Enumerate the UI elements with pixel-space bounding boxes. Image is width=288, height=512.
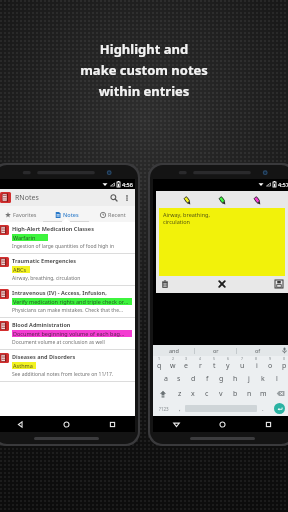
button[interactable]: High-Alert Medication Classes xyxy=(0,222,135,254)
button[interactable]: Notes xyxy=(43,206,89,222)
button[interactable]: 7 xyxy=(235,356,249,371)
staticText: z xyxy=(178,389,182,399)
button[interactable]: h xyxy=(228,371,242,386)
button[interactable]: Green highlighter xyxy=(215,194,229,206)
button[interactable]: Shift xyxy=(153,386,173,401)
button[interactable]: f xyxy=(200,371,214,386)
staticText: , xyxy=(179,405,181,413)
staticText: Diseases and Disorders xyxy=(12,353,76,360)
staticText: Notes xyxy=(63,211,79,218)
staticText: 1 xyxy=(158,356,161,361)
button[interactable]: Delete xyxy=(159,278,171,290)
button[interactable]: a xyxy=(159,371,172,386)
staticText: ABCs xyxy=(13,266,27,273)
button[interactable]: n xyxy=(242,386,256,401)
button[interactable]: Recents xyxy=(89,416,135,432)
button[interactable]: Cancel xyxy=(216,278,228,290)
button[interactable]: k xyxy=(256,371,270,386)
button[interactable]: 6 xyxy=(221,356,235,371)
staticText: 3 xyxy=(185,356,188,361)
button[interactable]: , xyxy=(174,401,185,416)
button[interactable]: Save xyxy=(273,278,285,290)
staticText: k xyxy=(261,374,265,384)
button[interactable]: v xyxy=(214,386,228,401)
staticText: Airway, breathing, circulation xyxy=(12,275,81,282)
button[interactable]: Home xyxy=(43,416,89,432)
button[interactable]: Yellow highlighter xyxy=(180,194,194,206)
button[interactable]: z xyxy=(173,386,186,401)
button[interactable]: j xyxy=(242,371,256,386)
button[interactable]: of xyxy=(237,345,278,356)
button[interactable]: s xyxy=(172,371,186,386)
staticText: and xyxy=(169,347,179,354)
button[interactable]: or xyxy=(195,345,236,356)
button[interactable]: Diseases and Disorders xyxy=(0,350,135,382)
button[interactable]: Blood Administration xyxy=(0,318,135,350)
staticText: Ingestion of large quantities of food hi… xyxy=(12,243,115,250)
button[interactable]: ?123 xyxy=(153,401,174,416)
staticText: i xyxy=(256,361,258,371)
button[interactable]: d xyxy=(186,371,200,386)
button[interactable]: g xyxy=(214,371,228,386)
button[interactable]: Favorites xyxy=(0,206,43,222)
staticText: Document beginning volume of each bag… xyxy=(13,330,125,337)
button[interactable]: l xyxy=(270,371,284,386)
button[interactable]: 4 xyxy=(193,356,207,371)
staticText: Highlight and xyxy=(0,40,288,58)
staticText: w xyxy=(170,361,176,371)
staticText: l xyxy=(276,374,278,384)
button[interactable]: Search xyxy=(107,191,121,205)
staticText: t xyxy=(213,361,216,371)
staticText: 4:57 xyxy=(278,181,288,188)
button[interactable]: Pink highlighter xyxy=(250,194,264,206)
button[interactable]: 9 xyxy=(263,356,277,371)
button[interactable]: More options xyxy=(121,192,132,203)
staticText: 6 xyxy=(227,356,230,361)
staticText: Blood Administration xyxy=(12,321,71,328)
staticText: 7 xyxy=(241,356,244,361)
button[interactable]: Voice input xyxy=(278,345,288,356)
staticText: u xyxy=(240,361,245,371)
button[interactable]: Enter xyxy=(268,401,288,416)
button[interactable]: 2 xyxy=(166,356,179,371)
button[interactable]: 1 xyxy=(153,356,166,371)
staticText: 4:56 xyxy=(122,181,133,188)
staticText: RNotes xyxy=(15,193,39,203)
staticText: j xyxy=(248,374,250,384)
staticText: 5 xyxy=(213,356,216,361)
staticText: or xyxy=(213,347,219,354)
button[interactable]: Recents xyxy=(245,416,288,432)
staticText: b xyxy=(233,389,238,399)
button[interactable]: 8 xyxy=(249,356,263,371)
staticText: Airway, breathing, xyxy=(163,211,210,218)
button[interactable]: Backspace xyxy=(270,386,288,401)
staticText: Favorites xyxy=(13,211,37,218)
button[interactable]: x xyxy=(186,386,200,401)
staticText: 0 xyxy=(283,356,286,361)
button[interactable]: m xyxy=(256,386,270,401)
staticText: d xyxy=(191,374,196,384)
button[interactable]: 5 xyxy=(207,356,221,371)
button[interactable]: c xyxy=(200,386,214,401)
staticText: Traumatic Emergencies xyxy=(12,257,77,264)
button[interactable]: and xyxy=(153,345,194,356)
staticText: y xyxy=(226,361,230,371)
button[interactable]: b xyxy=(228,386,242,401)
button[interactable]: Recent xyxy=(89,206,135,222)
button[interactable]: . xyxy=(257,401,268,416)
button[interactable]: Back xyxy=(153,416,199,432)
staticText: Verify medication rights and triple chec… xyxy=(13,298,131,305)
staticText: h xyxy=(233,374,238,384)
staticText: Warfarin xyxy=(13,234,36,241)
staticText: . xyxy=(262,405,264,413)
button[interactable]: Back xyxy=(0,416,43,432)
button[interactable]: 0 xyxy=(277,356,288,371)
button[interactable]: Home xyxy=(199,416,245,432)
button[interactable]: Traumatic Emergencies xyxy=(0,254,135,286)
staticText: a xyxy=(164,374,168,384)
button[interactable]: Intravenous (IV) - Access, Infusion, xyxy=(0,286,135,318)
staticText: 2 xyxy=(172,356,175,361)
staticText: n xyxy=(247,389,252,399)
button[interactable]: 3 xyxy=(179,356,193,371)
